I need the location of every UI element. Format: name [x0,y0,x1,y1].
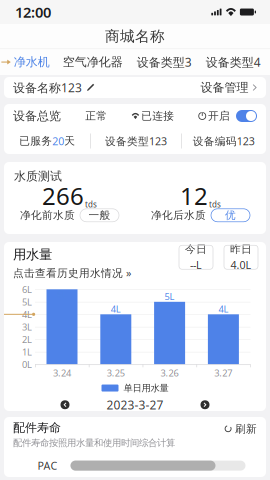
staticText: 12 [180,180,208,212]
staticText: 12:00 [15,2,51,22]
staticText: 净水机 [14,55,50,69]
staticText: 今日 [185,243,207,256]
staticText: 设备类型4 [206,54,261,70]
staticText: 4L [111,303,121,315]
staticText: 6L [57,288,67,300]
button[interactable]: 设备类型4 [199,50,268,74]
staticText: 2L [22,333,32,345]
staticText: 1L [22,346,32,358]
button[interactable]: 点击查看历史用水情况 » [13,266,131,280]
staticText: 水质测试 [14,169,62,184]
staticText: 6L [22,283,32,295]
button[interactable]: Previous day [60,400,70,410]
staticText: 设备编码123 [193,134,255,148]
staticText: 3.26 [160,367,178,379]
staticText: --L [190,258,202,272]
staticText: 配件寿命按照用水量和使用时间综合计算 [13,437,175,449]
button[interactable]: Next day [200,400,210,410]
staticText: 2023-3-27 [106,397,163,413]
staticText: 3.27 [214,367,232,379]
staticText: 天 [64,134,75,147]
staticText: 5L [165,290,175,302]
staticText: 优 [225,209,236,222]
staticText: 单日用水量 [123,382,168,394]
staticText: 已服务 [19,134,52,147]
staticText: 刷新 [235,422,257,435]
staticText: 设备总览 [13,109,61,123]
staticText: 5L [22,296,32,308]
staticText: 配件寿命 [13,420,61,435]
staticText: 净化后水质 [151,209,206,222]
staticText: 20 [52,134,64,148]
staticText: 一般 [88,209,110,222]
staticText: 商城名称 [105,27,165,45]
staticText: 设备名称123 [13,79,82,95]
staticText: 3.25 [107,367,125,379]
staticText: 设备管理 [200,80,248,95]
staticText: tds [209,199,221,210]
button[interactable]: 净水机 [0,50,56,74]
staticText: 净化前水质 [20,209,75,222]
staticText: 空气净化器 [63,55,123,69]
button[interactable]: 刷新 [224,420,257,435]
staticText: 正常 [85,109,107,122]
button[interactable]: 空气净化器 [56,50,130,74]
staticText: 4L [218,303,228,315]
staticText: PAC [37,458,57,473]
staticText: 昨日 [230,243,252,256]
staticText: tds [85,199,97,210]
staticText: 3.24 [53,367,71,379]
staticText: 0L [22,358,32,370]
button[interactable]: 设备类型3 [130,50,199,74]
staticText: 3L [22,321,32,333]
button[interactable]: Power [236,110,257,122]
staticText: 开启 [208,109,230,122]
staticText: 用水量 [13,246,52,263]
staticText: 已连接 [141,109,174,122]
staticText: 266 [42,180,84,212]
staticText: 设备类型123 [105,134,167,148]
staticText: 4L [22,308,32,320]
staticText: 4.0L [230,258,251,272]
staticText: 点击查看历史用水情况 » [13,266,131,280]
button[interactable]: 设备管理 [200,77,257,98]
staticText: 设备类型3 [137,54,192,70]
